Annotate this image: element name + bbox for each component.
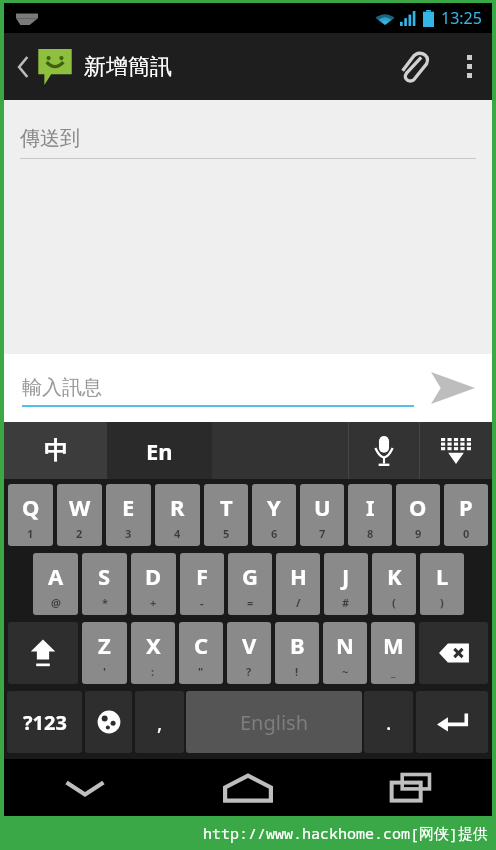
button[interactable]: I xyxy=(348,484,392,546)
button[interactable]: G xyxy=(228,553,272,615)
button[interactable]: Attach xyxy=(382,33,446,100)
button[interactable]: T xyxy=(204,484,248,546)
button[interactable]: Z xyxy=(82,622,127,684)
staticText: 5 xyxy=(223,526,230,541)
staticText: N xyxy=(336,630,354,660)
staticText: 9 xyxy=(415,526,422,541)
staticText: G xyxy=(242,561,258,591)
button[interactable]: , xyxy=(135,691,184,753)
button[interactable]: U xyxy=(300,484,344,546)
staticText: 輸入訊息 xyxy=(22,375,102,400)
staticText: En xyxy=(146,436,173,466)
staticText: Y xyxy=(267,492,281,522)
button[interactable]: 傳送到 xyxy=(20,118,476,158)
staticText: @ xyxy=(51,595,61,610)
button[interactable]: H xyxy=(276,553,320,615)
staticText: H xyxy=(290,561,307,591)
button[interactable]: Backspace xyxy=(419,622,488,684)
staticText: + xyxy=(150,595,157,610)
button[interactable]: Hide keyboard xyxy=(4,759,166,816)
staticText: . xyxy=(386,709,392,736)
staticText: 0 xyxy=(463,526,470,541)
staticText: C xyxy=(194,630,209,660)
staticText: E xyxy=(122,492,135,522)
staticText: ( xyxy=(392,595,396,610)
button[interactable]: C xyxy=(179,622,223,684)
button[interactable]: W xyxy=(57,484,102,546)
staticText: Z xyxy=(98,630,111,660)
button[interactable]: V xyxy=(227,622,271,684)
staticText: : xyxy=(151,664,155,679)
staticText: 7 xyxy=(319,526,326,541)
button[interactable]: 中 xyxy=(4,422,107,479)
staticText: 3 xyxy=(125,526,132,541)
button[interactable]: Recent apps xyxy=(329,759,492,816)
button[interactable]: . xyxy=(364,691,413,753)
staticText: L xyxy=(436,561,449,591)
staticText: I xyxy=(366,492,375,522)
staticText: D xyxy=(145,561,162,591)
staticText: M xyxy=(383,630,404,660)
button[interactable]: En xyxy=(107,422,212,479)
staticText: ?123 xyxy=(23,709,67,736)
button[interactable]: Y xyxy=(252,484,296,546)
button[interactable]: F xyxy=(180,553,224,615)
staticText: P xyxy=(459,492,473,522)
staticText: ? xyxy=(246,664,252,679)
button[interactable]: N xyxy=(323,622,367,684)
button[interactable]: Back xyxy=(12,33,34,100)
button[interactable]: More options xyxy=(446,33,492,100)
button[interactable]: 輸入訊息 xyxy=(22,369,414,405)
staticText: K xyxy=(387,561,402,591)
button[interactable]: S xyxy=(82,553,127,615)
staticText: U xyxy=(314,492,331,522)
staticText: 2 xyxy=(76,526,83,541)
staticText: Q xyxy=(22,492,40,522)
staticText: = xyxy=(247,595,254,610)
button[interactable]: O xyxy=(396,484,440,546)
staticText: * xyxy=(102,595,108,610)
staticText: A xyxy=(48,561,64,591)
staticText: ' xyxy=(103,664,106,679)
staticText: 4 xyxy=(174,526,181,541)
staticText: - xyxy=(200,595,204,610)
staticText: English xyxy=(240,709,309,736)
button[interactable]: X xyxy=(131,622,175,684)
button[interactable]: Q xyxy=(8,484,53,546)
button[interactable]: B xyxy=(275,622,319,684)
button[interactable]: R xyxy=(155,484,200,546)
button[interactable]: Change language xyxy=(85,691,132,753)
staticText: 13:25 xyxy=(441,7,482,29)
staticText: http://www.hackhome.com[网侠]提供 xyxy=(202,823,488,843)
button[interactable]: Home xyxy=(166,759,329,816)
staticText: ~ xyxy=(342,664,349,679)
staticText: O xyxy=(409,492,427,522)
button[interactable]: ?123 xyxy=(7,691,82,753)
staticText: B xyxy=(290,630,305,660)
button[interactable]: Hide keyboard xyxy=(420,422,492,479)
button[interactable]: K xyxy=(372,553,416,615)
staticText: 新增簡訊 xyxy=(84,53,172,81)
button[interactable]: M xyxy=(371,622,415,684)
button[interactable]: Send xyxy=(414,354,492,422)
button[interactable]: Voice input xyxy=(349,422,419,479)
staticText: W xyxy=(69,492,91,522)
staticText: 傳送到 xyxy=(20,126,80,151)
staticText: 8 xyxy=(367,526,374,541)
button[interactable]: J xyxy=(324,553,368,615)
button[interactable]: A xyxy=(33,553,78,615)
button[interactable]: Shift xyxy=(8,622,78,684)
staticText: ! xyxy=(295,664,299,679)
button[interactable]: D xyxy=(131,553,176,615)
button[interactable]: P xyxy=(444,484,488,546)
staticText: , xyxy=(157,709,163,736)
button[interactable]: E xyxy=(106,484,151,546)
staticText: J xyxy=(342,561,350,591)
staticText: F xyxy=(196,561,209,591)
staticText: 1 xyxy=(27,526,34,541)
button[interactable]: English xyxy=(186,691,362,753)
button[interactable]: Enter xyxy=(416,691,488,753)
staticText: # xyxy=(342,595,350,610)
button[interactable]: L xyxy=(420,553,464,615)
